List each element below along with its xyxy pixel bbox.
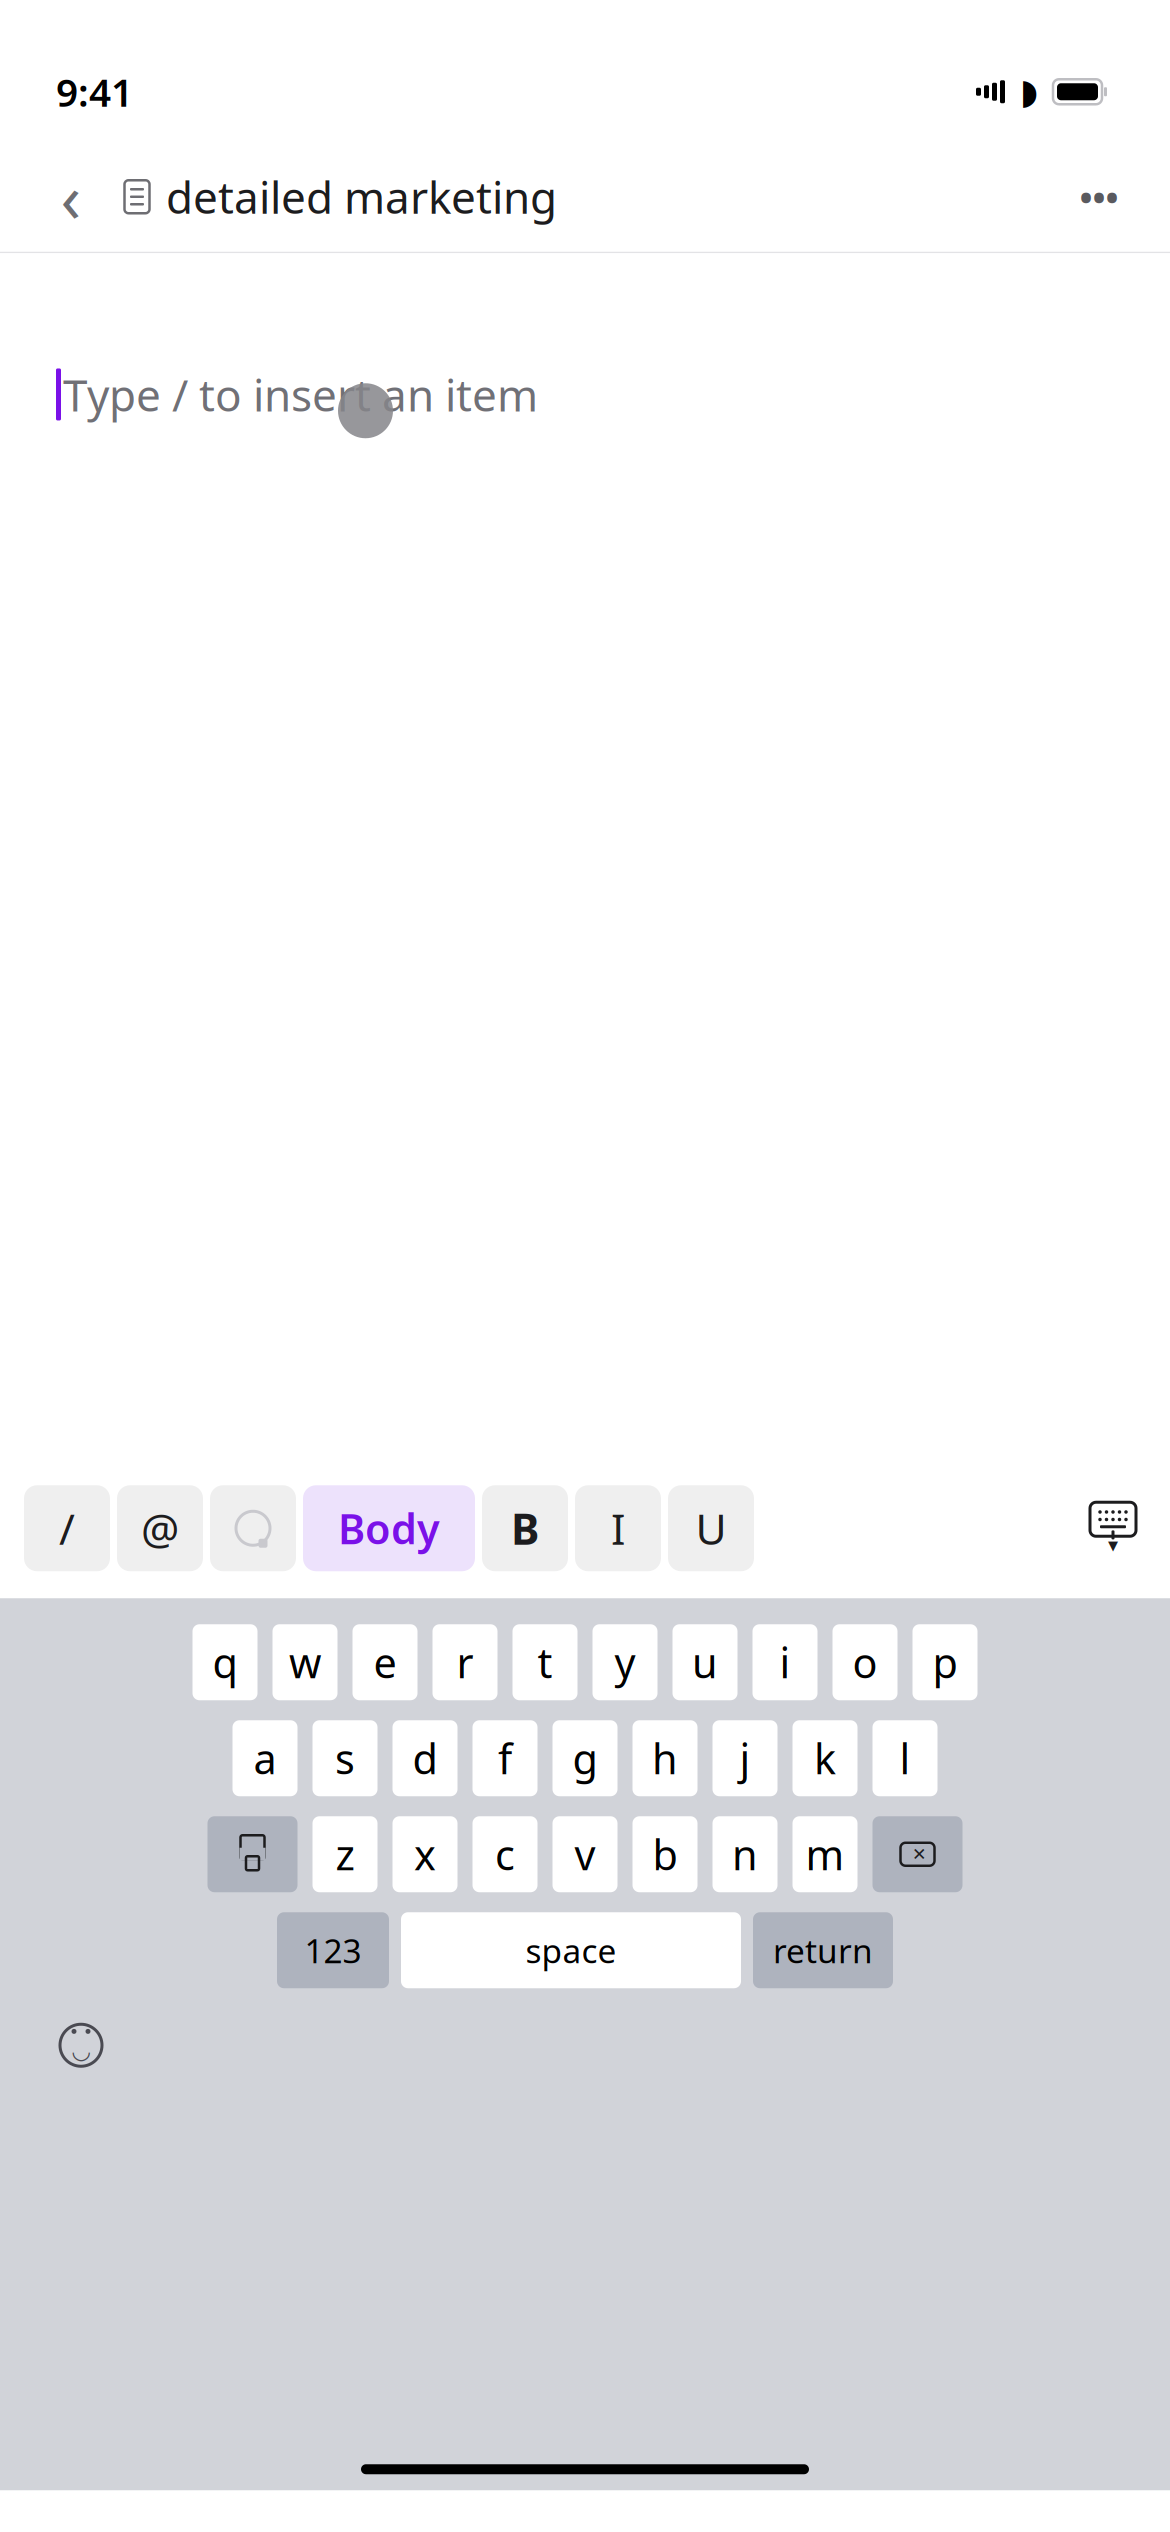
button[interactable]: Insert [24,1485,110,1571]
staticText: d [412,1731,437,1786]
button[interactable]: h [632,1720,697,1796]
staticText: detailed marketing [166,167,557,226]
button[interactable]: z [312,1816,377,1892]
button[interactable]: 123 [277,1912,389,1988]
staticText: s [335,1731,355,1786]
button[interactable]: Mention [117,1485,203,1571]
button[interactable]: i [752,1624,817,1700]
button[interactable]: n [712,1816,777,1892]
button[interactable]: s [312,1720,377,1796]
button[interactable]: u [672,1624,737,1700]
button[interactable]: y [592,1624,657,1700]
staticText: Body [338,1501,440,1556]
button[interactable]: v [552,1816,617,1892]
button[interactable]: t [512,1624,577,1700]
staticText: / [59,1500,75,1557]
staticText: x [414,1827,436,1882]
button[interactable]: w [272,1624,337,1700]
button[interactable]: return [753,1912,893,1988]
staticText: v [574,1827,595,1882]
button[interactable]: Emoji [50,2014,112,2076]
button[interactable]: More options [1062,160,1136,234]
staticText: U [695,1500,726,1557]
staticText: space [525,1928,616,1972]
button[interactable]: Back [34,160,108,234]
button[interactable]: x [392,1816,457,1892]
staticText: c [495,1827,515,1882]
staticText: a [253,1731,276,1786]
staticText: ••• [1079,174,1118,220]
staticText: m [805,1827,844,1882]
staticText: q [212,1635,237,1690]
staticText: h [652,1731,678,1786]
button[interactable]: c [472,1816,537,1892]
button[interactable]: f [472,1720,537,1796]
button[interactable]: d [392,1720,457,1796]
staticText: w [289,1635,321,1690]
staticText: r [456,1635,473,1690]
staticText: ✕ [912,1844,927,1864]
button[interactable]: a [232,1720,297,1796]
staticText: j [739,1731,750,1786]
staticText: ◡ [72,2038,89,2064]
staticText: B [511,1500,539,1557]
button[interactable]: Delete [872,1816,962,1892]
button[interactable]: Italic [575,1485,661,1571]
staticText: ‹ [60,152,81,241]
button[interactable]: Comment [210,1485,296,1571]
staticText: g [572,1731,597,1786]
staticText: o [852,1635,877,1690]
staticText: i [779,1635,790,1690]
button[interactable]: e [352,1624,417,1700]
staticText: Type / to insert an item [63,365,538,424]
button[interactable]: b [632,1816,697,1892]
button[interactable]: m [792,1816,857,1892]
staticText: b [652,1827,677,1882]
button[interactable]: o [832,1624,897,1700]
button[interactable]: Bold [482,1485,568,1571]
button[interactable]: l [872,1720,937,1796]
staticText: y [614,1635,635,1690]
staticText: @ [141,1500,179,1557]
staticText: e [373,1635,396,1690]
button[interactable]: p [912,1624,977,1700]
button[interactable]: k [792,1720,857,1796]
staticText: I [611,1500,625,1557]
button[interactable]: Shift [207,1816,297,1892]
button[interactable]: q [192,1624,257,1700]
button[interactable]: Underline [668,1485,754,1571]
staticText: z [335,1827,354,1882]
button[interactable]: r [432,1624,497,1700]
button[interactable]: Text style: Body [303,1485,475,1571]
button[interactable]: j [712,1720,777,1796]
staticText: t [537,1635,552,1690]
staticText: u [692,1635,718,1690]
staticText: ▾ [1108,1533,1118,1556]
staticText: l [899,1731,910,1786]
staticText: 9:41 [56,66,133,117]
button[interactable]: space [401,1912,741,1988]
staticText: p [932,1635,957,1690]
staticText: 123 [304,1928,361,1972]
button[interactable]: Hide keyboard [1082,1497,1144,1559]
staticText: ◗ [1020,72,1038,111]
staticText: return [773,1928,873,1972]
button[interactable]: g [552,1720,617,1796]
staticText: f [498,1731,512,1786]
staticText: k [814,1731,836,1786]
staticText: n [732,1827,758,1882]
